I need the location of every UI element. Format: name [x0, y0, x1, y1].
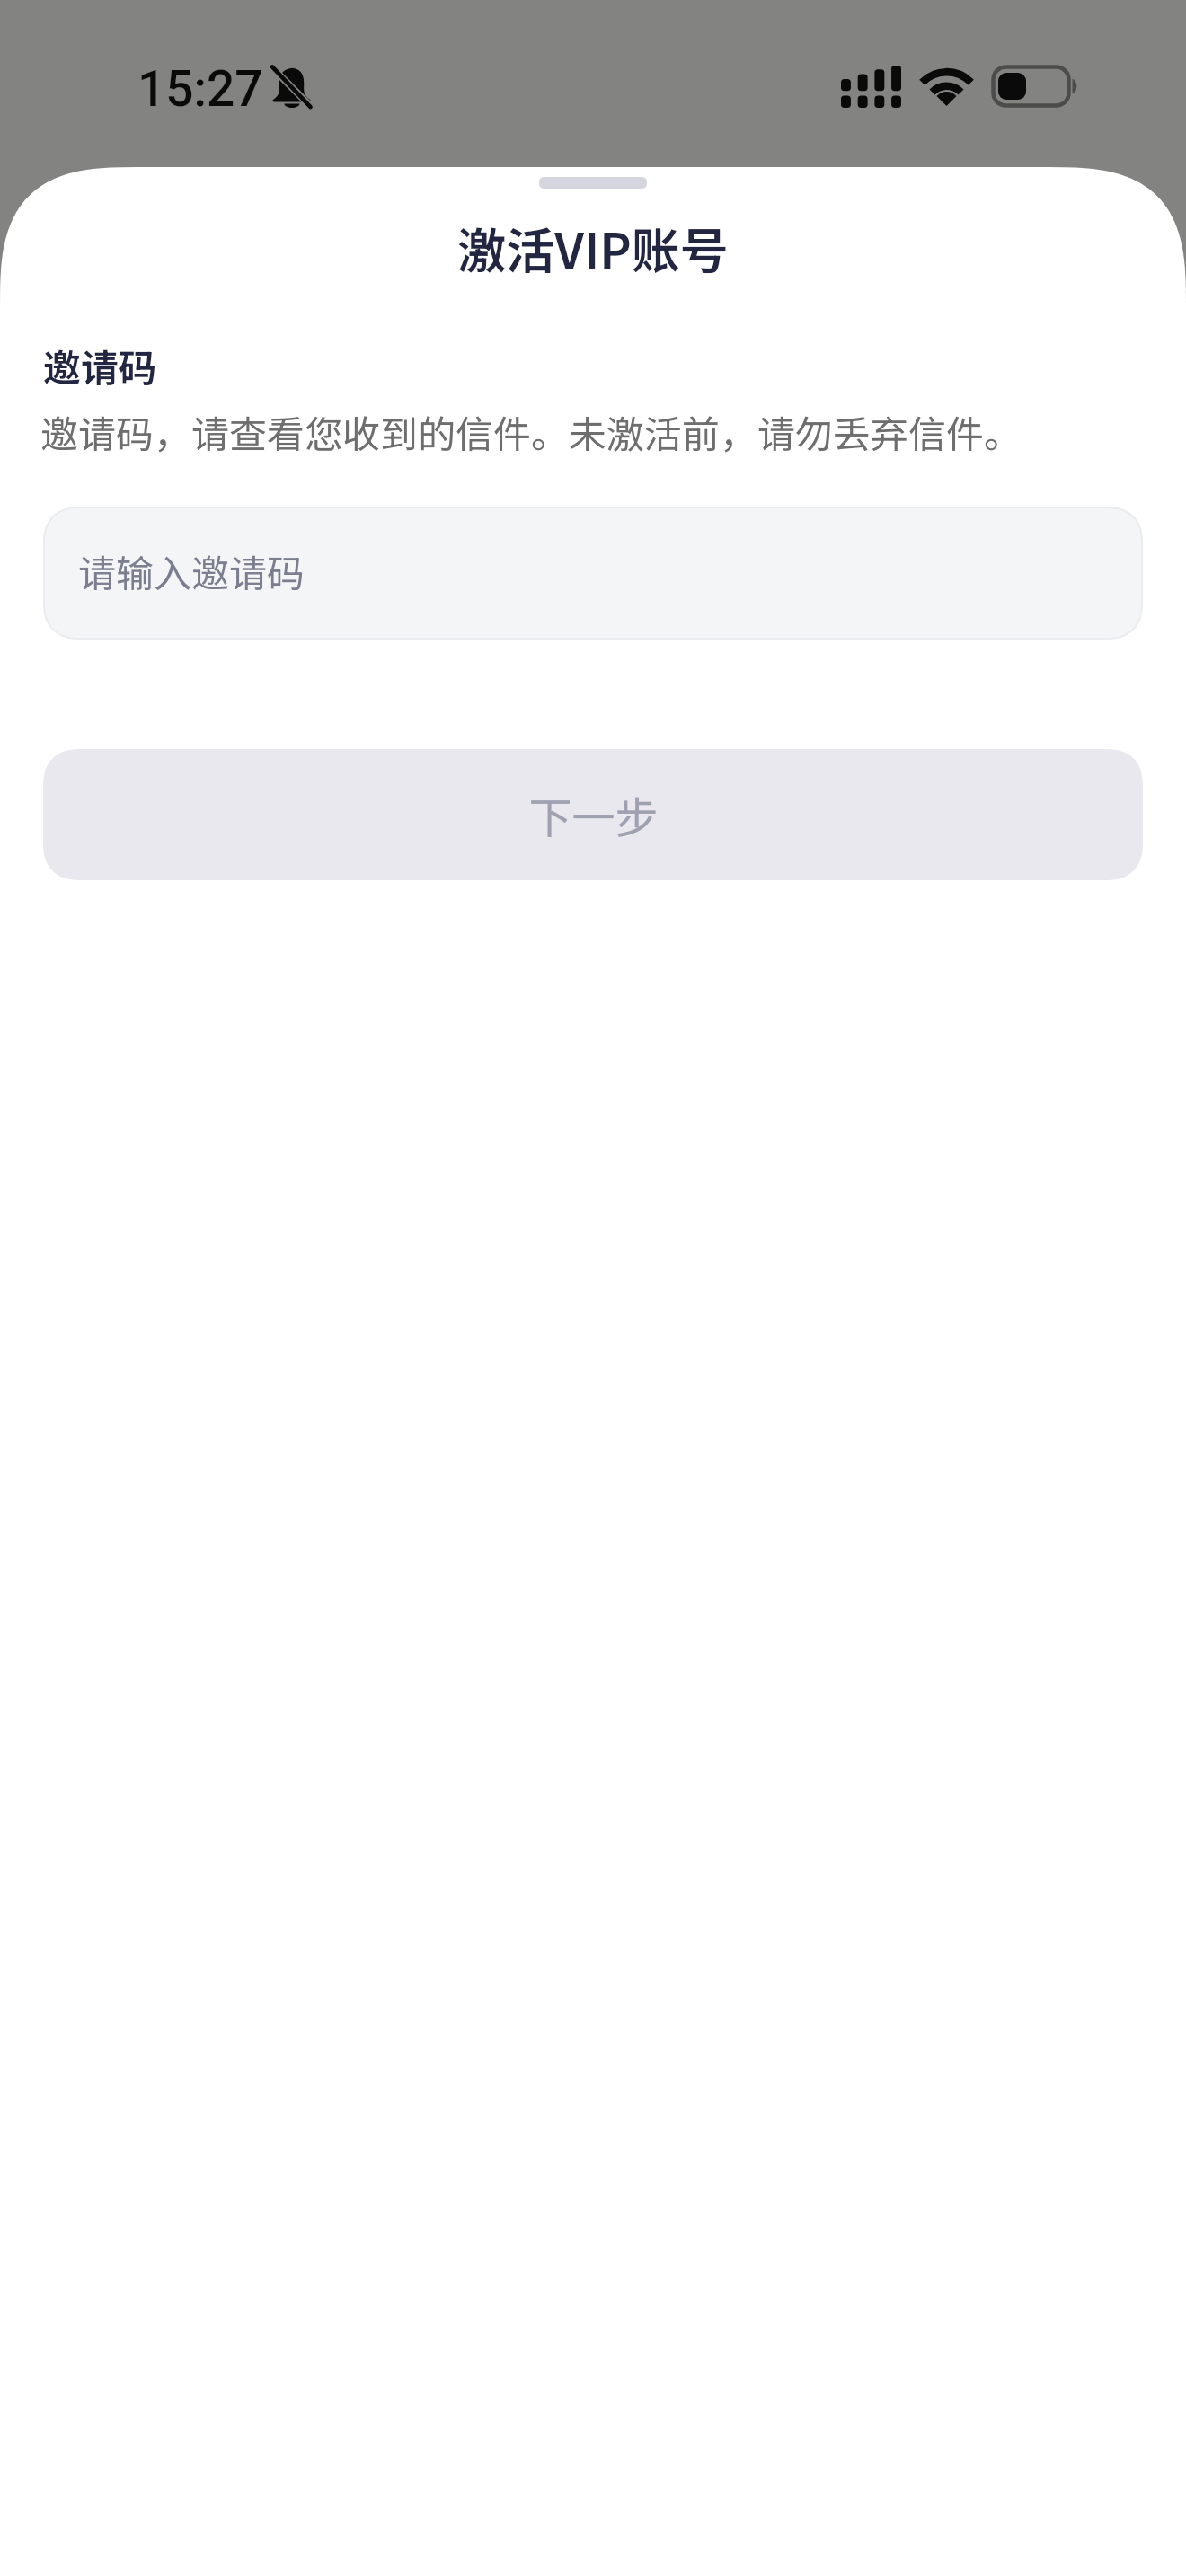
staticText: 激活VIP账号	[457, 212, 729, 282]
button[interactable]: Dismiss	[0, 0, 1186, 2576]
other: Silent mode	[272, 66, 311, 108]
button[interactable]: 下一步	[43, 749, 1143, 880]
other: Cellular signal	[841, 66, 901, 108]
staticText: 邀请码	[43, 338, 157, 393]
staticText: 15:27	[137, 60, 263, 118]
staticText: 下一步	[528, 783, 659, 846]
button[interactable]: 请输入邀请码	[43, 507, 1143, 640]
button[interactable]: Drag handle	[539, 177, 647, 189]
other: Wi-Fi	[921, 66, 972, 106]
staticText: 邀请码，请查看您收到的信件。未激活前，请勿丢弃信件。	[40, 404, 1022, 459]
staticText: 请输入邀请码	[78, 543, 305, 598]
other: Battery	[992, 66, 1078, 107]
